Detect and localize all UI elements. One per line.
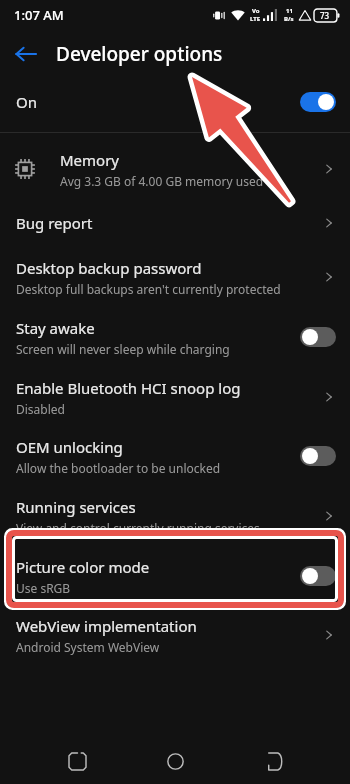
staticText: Developer options (56, 41, 223, 67)
button[interactable]: Enable Bluetooth HCI snoop log (0, 367, 350, 427)
staticText: Use sRGB (16, 580, 71, 596)
staticText: Enable Bluetooth HCI snoop log (16, 378, 241, 398)
staticText: View and control currently running servi… (16, 520, 260, 536)
button[interactable]: Bug report (0, 199, 350, 247)
staticText: OEM unlocking (16, 437, 123, 457)
button[interactable]: OEM unlocking (0, 427, 350, 485)
button[interactable]: Home (153, 739, 197, 783)
button[interactable]: Stay awake (0, 307, 350, 367)
staticText: Allow the bootloader to be unlocked (16, 460, 221, 476)
staticText: Picture color mode (16, 557, 150, 577)
staticText: On (16, 92, 37, 112)
staticText: Running services (16, 497, 136, 517)
staticText: Stay awake (16, 318, 95, 338)
staticText: Android System WebView (16, 639, 160, 655)
button[interactable]: WebView implementation (0, 605, 350, 665)
staticText: Disabled (16, 401, 65, 417)
staticText: LTE (250, 15, 261, 23)
staticText: Screen will never sleep while charging (16, 341, 230, 357)
staticText: 11 (286, 7, 293, 15)
staticText: Avg 3.3 GB of 4.00 GB memory used (60, 173, 264, 189)
staticText: 1:07 AM (14, 6, 64, 24)
staticText: B/s (284, 15, 294, 23)
button[interactable]: On (0, 78, 350, 126)
staticText: Desktop backup password (16, 258, 202, 278)
staticText: 73 (320, 10, 330, 21)
staticText: Desktop full backups aren't currently pr… (16, 281, 281, 297)
staticText: Bug report (16, 213, 93, 233)
button[interactable]: Recent apps (55, 739, 99, 783)
button[interactable]: Memory (0, 139, 350, 199)
button[interactable]: Back (252, 739, 296, 783)
staticText: Memory (60, 150, 120, 170)
button[interactable]: Back (8, 36, 44, 72)
button[interactable]: Desktop backup password (0, 247, 350, 307)
button[interactable]: Running services (0, 485, 350, 547)
staticText: Vo (252, 7, 260, 15)
staticText: WebView implementation (16, 616, 197, 636)
button[interactable]: Picture color mode (0, 547, 350, 605)
